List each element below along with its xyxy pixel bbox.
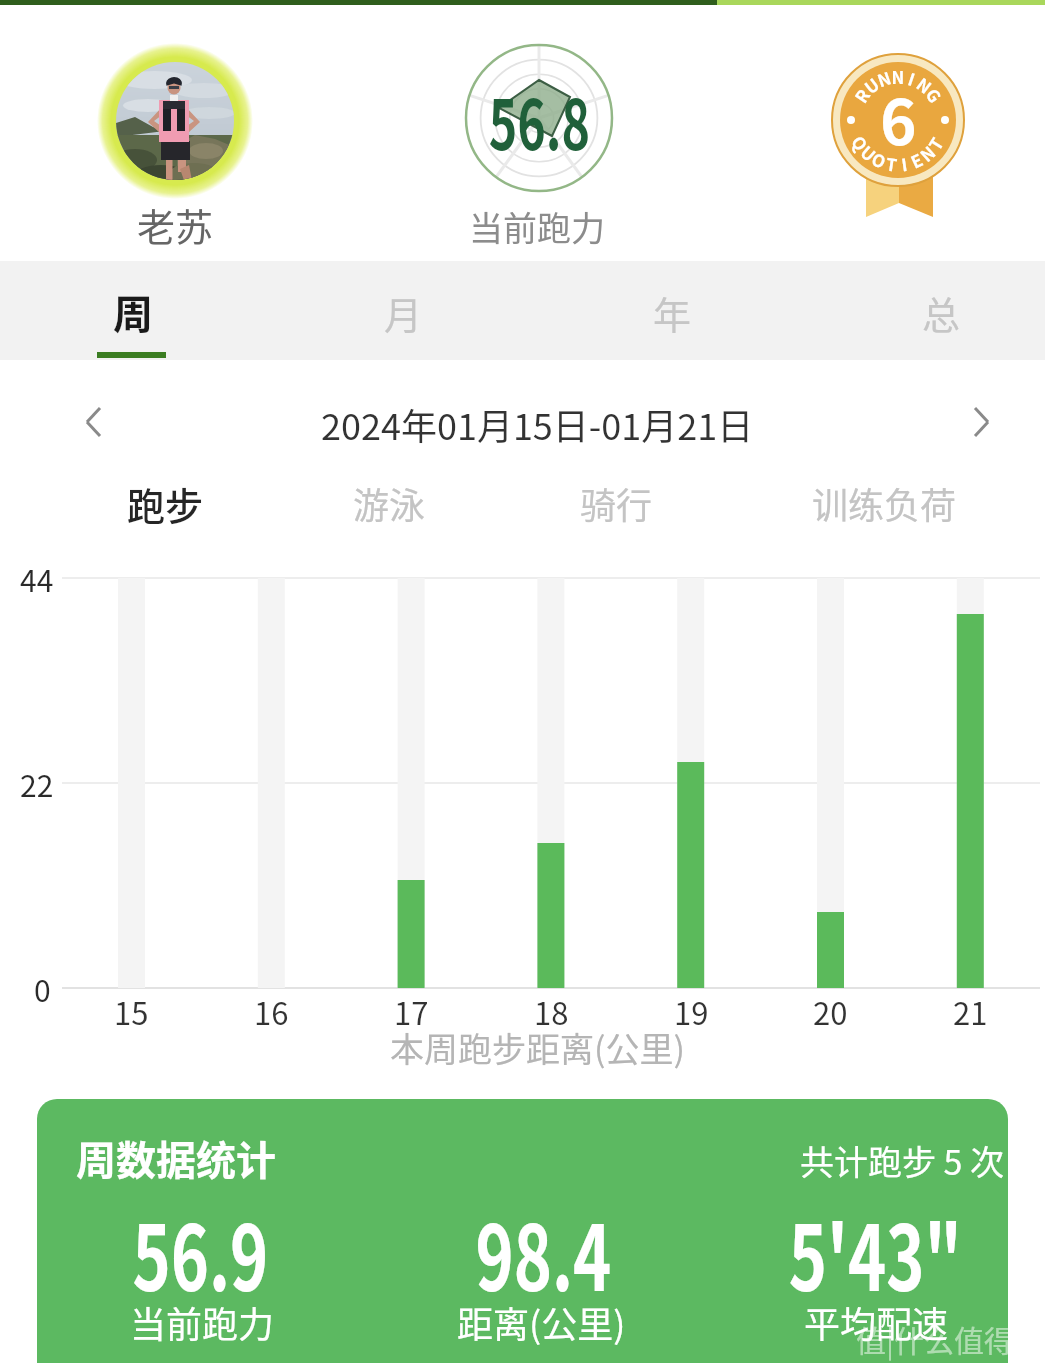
staticText: 游泳 <box>353 477 426 529</box>
staticText: 56.8 <box>489 70 590 170</box>
staticText: 值|什么值得买 <box>856 1317 1045 1360</box>
staticText: 当前跑力 <box>130 1296 275 1348</box>
staticText: 20 <box>813 989 848 1034</box>
staticText: 17 <box>394 989 429 1034</box>
staticText: 16 <box>254 989 289 1034</box>
staticText: 22 <box>20 762 54 805</box>
staticText: 总 <box>922 285 961 340</box>
staticText: 56.9 <box>132 1187 269 1307</box>
staticText: 21 <box>953 989 988 1034</box>
staticText: 0 <box>34 967 51 1010</box>
staticText: 老苏 <box>137 197 214 252</box>
staticText: 周数据统计 <box>76 1129 276 1187</box>
staticText: 周 <box>113 283 153 341</box>
staticText: 98.4 <box>475 1187 612 1307</box>
staticText: 6 <box>880 73 917 163</box>
staticText: 本周跑步距离(公里) <box>390 1023 685 1072</box>
staticText: 训练负荷 <box>812 477 957 529</box>
staticText: 骑行 <box>580 477 653 529</box>
staticText: 跑步 <box>127 476 204 531</box>
staticText: 距离(公里) <box>457 1296 626 1348</box>
staticText: 2024年01月15日-01月21日 <box>321 398 754 450</box>
staticText: 44 <box>20 557 54 600</box>
staticText: 19 <box>674 989 709 1034</box>
staticText: 平均配速 <box>804 1296 949 1348</box>
staticText: 月 <box>384 285 423 340</box>
staticText: 18 <box>534 989 569 1034</box>
staticText: 15 <box>114 989 149 1034</box>
staticText: 共计跑步 5 次 <box>800 1136 1005 1185</box>
staticText: 年 <box>653 285 692 340</box>
staticText: 当前跑力 <box>469 202 605 251</box>
staticText: 5'43" <box>789 1187 962 1307</box>
